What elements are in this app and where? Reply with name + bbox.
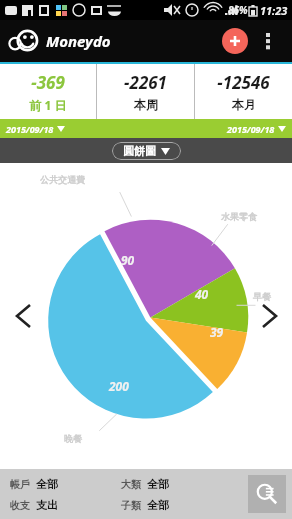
staticText: 本月: [232, 97, 256, 112]
staticText: 公共交通費: [40, 174, 85, 185]
staticText: 大類: [121, 478, 141, 491]
button[interactable]: Search: [248, 475, 286, 513]
staticText: 水果零食: [221, 211, 257, 222]
button[interactable]: 圓餅圖: [112, 142, 181, 160]
button[interactable]: -12546: [195, 64, 292, 119]
staticText: 86%: [228, 3, 248, 17]
button[interactable]: Add: [222, 28, 248, 54]
button[interactable]: -369: [0, 64, 96, 119]
staticText: 圓餅圖: [123, 144, 156, 158]
button[interactable]: Previous: [6, 299, 40, 333]
staticText: -2261: [124, 71, 167, 94]
staticText: Moneydo: [46, 31, 111, 51]
staticText: 收支: [10, 499, 30, 512]
button[interactable]: Next: [252, 299, 286, 333]
button[interactable]: 2015/09/18: [227, 123, 286, 135]
staticText: 本周: [134, 97, 158, 112]
staticText: 全部: [147, 498, 169, 512]
staticText: 支出: [36, 498, 58, 512]
staticText: 全部: [36, 477, 58, 491]
staticText: 帳戶: [10, 478, 30, 491]
staticText: 前 1 日: [29, 97, 67, 113]
button[interactable]: -2261: [97, 64, 194, 119]
staticText: 11:23: [260, 3, 288, 18]
button[interactable]: 子類: [121, 498, 169, 512]
staticText: 全部: [147, 477, 169, 491]
staticText: 子類: [121, 499, 141, 512]
staticText: 早餐: [253, 291, 271, 302]
staticText: -369: [31, 71, 65, 94]
button[interactable]: 帳戶: [10, 477, 58, 491]
button[interactable]: 2015/09/18: [6, 123, 65, 135]
staticText: 40: [195, 286, 209, 302]
staticText: 90: [121, 252, 135, 268]
button[interactable]: More options: [254, 27, 282, 55]
button[interactable]: 收支: [10, 498, 58, 512]
staticText: -12546: [217, 71, 270, 94]
staticText: 2015/09/18: [227, 123, 275, 135]
button[interactable]: 大類: [121, 477, 169, 491]
staticText: 39: [210, 324, 224, 340]
staticText: 晚餐: [64, 433, 82, 444]
staticText: 200: [109, 378, 129, 394]
staticText: 2015/09/18: [6, 123, 54, 135]
